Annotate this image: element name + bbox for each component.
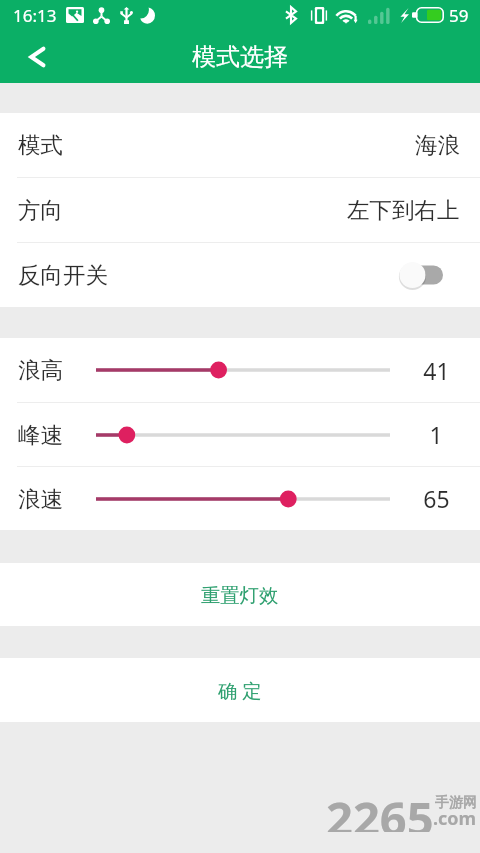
button[interactable]: 重置灯效: [0, 563, 480, 626]
button[interactable]: 反向开关: [0, 243, 480, 307]
staticText: 模式选择: [192, 42, 288, 72]
other: Toggle: [399, 260, 443, 290]
staticText: 59: [449, 4, 469, 27]
staticText: .com: [433, 806, 477, 831]
staticText: 重置灯效: [201, 583, 279, 607]
button[interactable]: [84, 484, 402, 514]
staticText: 反向开关: [18, 261, 108, 289]
button[interactable]: 确 定: [0, 658, 480, 722]
staticText: 模式: [18, 131, 63, 159]
staticText: 浪速: [18, 485, 63, 513]
button[interactable]: [84, 355, 402, 385]
staticText: 方向: [18, 196, 63, 224]
staticText: 41: [423, 355, 450, 386]
staticText: 浪高: [18, 356, 63, 384]
staticText: 2265: [326, 786, 434, 832]
staticText: 峰速: [18, 421, 63, 449]
staticText: 1: [429, 419, 443, 450]
staticText: 确 定: [218, 677, 262, 703]
staticText: 65: [423, 483, 450, 514]
staticText: 16:13: [13, 4, 57, 27]
button[interactable]: [84, 420, 402, 450]
staticText: 左下到右上: [347, 196, 460, 224]
button[interactable]: 方向: [0, 178, 480, 242]
button[interactable]: Back: [0, 30, 60, 83]
staticText: 手游网: [435, 794, 477, 812]
staticText: 海浪: [415, 131, 460, 159]
button[interactable]: 模式: [0, 113, 480, 177]
